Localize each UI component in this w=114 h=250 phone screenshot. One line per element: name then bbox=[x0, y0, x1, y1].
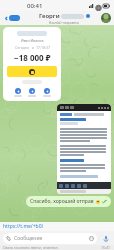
staticText: Иван Иванов bbox=[21, 38, 44, 43]
staticText: 17:18:37 bbox=[36, 45, 50, 50]
staticText: Сегодня bbox=[15, 45, 30, 50]
button[interactable]: Repeat bbox=[15, 88, 21, 94]
button[interactable]: Photo message bbox=[57, 104, 111, 194]
staticText: 00:41 bbox=[27, 2, 43, 10]
staticText: Георги bbox=[39, 12, 60, 20]
button[interactable]: Profile photo bbox=[101, 13, 111, 23]
staticText: 15:41 bbox=[101, 245, 110, 250]
button[interactable]: Share bbox=[29, 88, 35, 94]
staticText: https://t.me/+b0l bbox=[3, 223, 43, 230]
button[interactable]: Receipt bbox=[44, 88, 50, 94]
button[interactable]: Спасибо, хороший отправ bbox=[26, 196, 111, 207]
button[interactable]: Back bbox=[3, 15, 21, 21]
staticText: Спасибо, хороший отправ bbox=[30, 198, 94, 205]
button[interactable]: Bank logo bbox=[7, 66, 57, 77]
staticText: был(а) недавно bbox=[49, 20, 79, 25]
other: Sticker bbox=[89, 236, 94, 241]
button[interactable]: Attach bbox=[3, 233, 97, 244]
staticText: −18 000 ₽ bbox=[14, 52, 51, 63]
button[interactable]: Иван Иванов bbox=[3, 27, 61, 101]
button[interactable]: https://t.me/+b0l bbox=[0, 222, 114, 231]
button[interactable]: Voice message bbox=[100, 233, 111, 244]
other: Attach bbox=[6, 236, 11, 241]
staticText: Связь сочинять: ввеси, отменил. bbox=[3, 245, 59, 250]
staticText: Сообщение bbox=[14, 235, 43, 242]
